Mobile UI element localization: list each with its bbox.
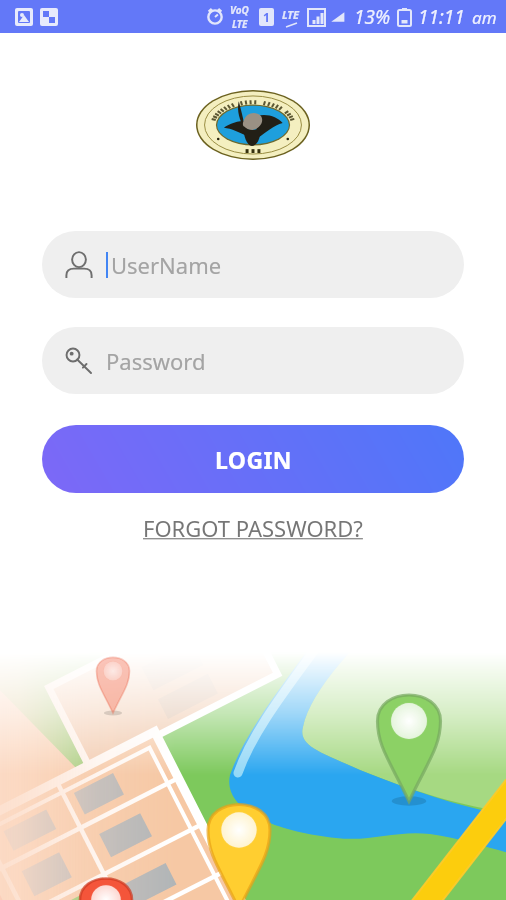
staticText: LTE — [232, 17, 248, 31]
staticText: LOGIN — [215, 444, 292, 475]
staticText: VoQ — [230, 3, 249, 17]
staticText: UserName — [111, 250, 222, 280]
button[interactable]: Password — [42, 327, 464, 394]
staticText: 11:11 — [418, 4, 465, 30]
button[interactable]: UserName — [42, 231, 464, 298]
staticText: 1 — [263, 9, 270, 25]
button[interactable]: LOGIN — [42, 425, 464, 493]
staticText: 13% — [354, 4, 391, 30]
staticText: Password — [106, 346, 206, 376]
button[interactable]: FORGOT PASSWORD? — [139, 511, 367, 545]
staticText: LTE — [282, 7, 300, 22]
staticText: am — [472, 6, 497, 29]
